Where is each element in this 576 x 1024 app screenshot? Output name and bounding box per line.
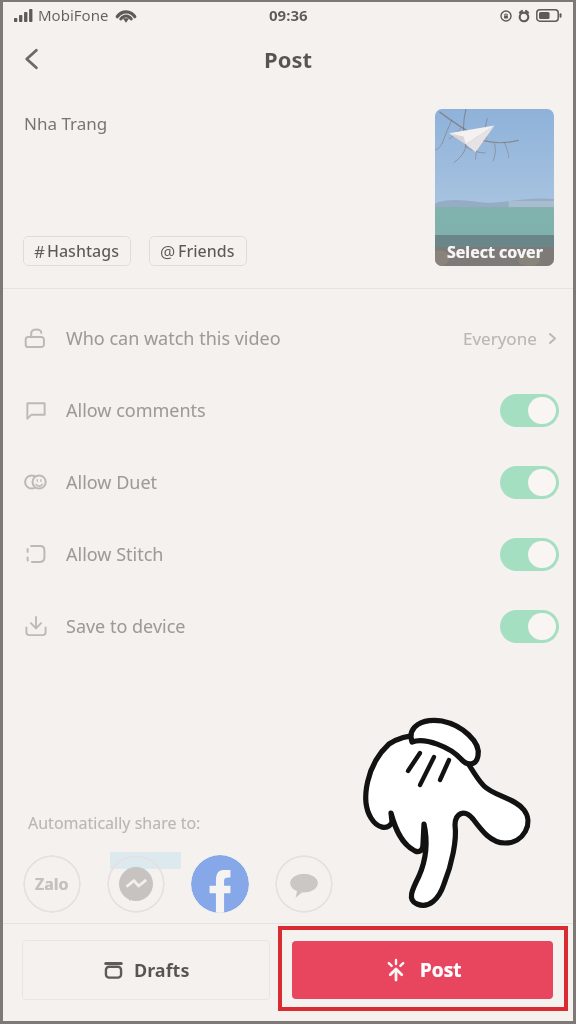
staticText: Allow comments — [66, 398, 206, 423]
button[interactable]: Toggle on — [500, 466, 559, 499]
staticText: Everyone — [463, 327, 537, 350]
button[interactable]: @ — [149, 236, 247, 266]
staticText: Drafts — [134, 958, 190, 983]
staticText: Zalo — [35, 873, 69, 895]
button[interactable]: Share by message — [275, 855, 333, 913]
staticText: Friends — [178, 240, 235, 262]
button[interactable]: Drafts — [22, 940, 270, 1000]
staticText: Hashtags — [47, 240, 119, 262]
button[interactable]: Allow Stitch — [3, 518, 573, 590]
button[interactable]: Allow comments — [3, 374, 573, 446]
staticText: Save to device — [66, 614, 186, 639]
button[interactable]: Select cover — [435, 109, 554, 266]
button[interactable]: Allow Duet — [3, 446, 573, 518]
staticText: MobiFone — [38, 5, 109, 25]
staticText: Allow Stitch — [66, 542, 164, 567]
staticText: 09:36 — [269, 5, 308, 25]
button[interactable]: Toggle on — [500, 538, 559, 571]
staticText: @ — [160, 240, 176, 263]
staticText: # — [34, 240, 45, 263]
button[interactable]: Share to Zalo — [23, 855, 81, 913]
staticText: Post — [264, 44, 313, 74]
staticText: Post — [420, 957, 462, 983]
staticText: Select cover — [447, 241, 543, 263]
button[interactable]: Toggle on — [500, 394, 559, 427]
button[interactable]: # — [23, 236, 131, 266]
button[interactable]: Who can watch this video — [3, 302, 573, 374]
button[interactable]: Toggle on — [500, 610, 559, 643]
button[interactable]: Save to device — [3, 590, 573, 662]
button[interactable]: Share to Messenger — [107, 855, 165, 913]
staticText: Nha Trang — [24, 112, 108, 135]
staticText: Who can watch this video — [66, 326, 281, 351]
button[interactable]: Share to Facebook — [191, 855, 249, 913]
staticText: Automatically share to: — [28, 812, 201, 834]
button[interactable]: Post — [292, 941, 553, 999]
staticText: Allow Duet — [66, 470, 158, 495]
button[interactable]: Back — [9, 36, 55, 82]
